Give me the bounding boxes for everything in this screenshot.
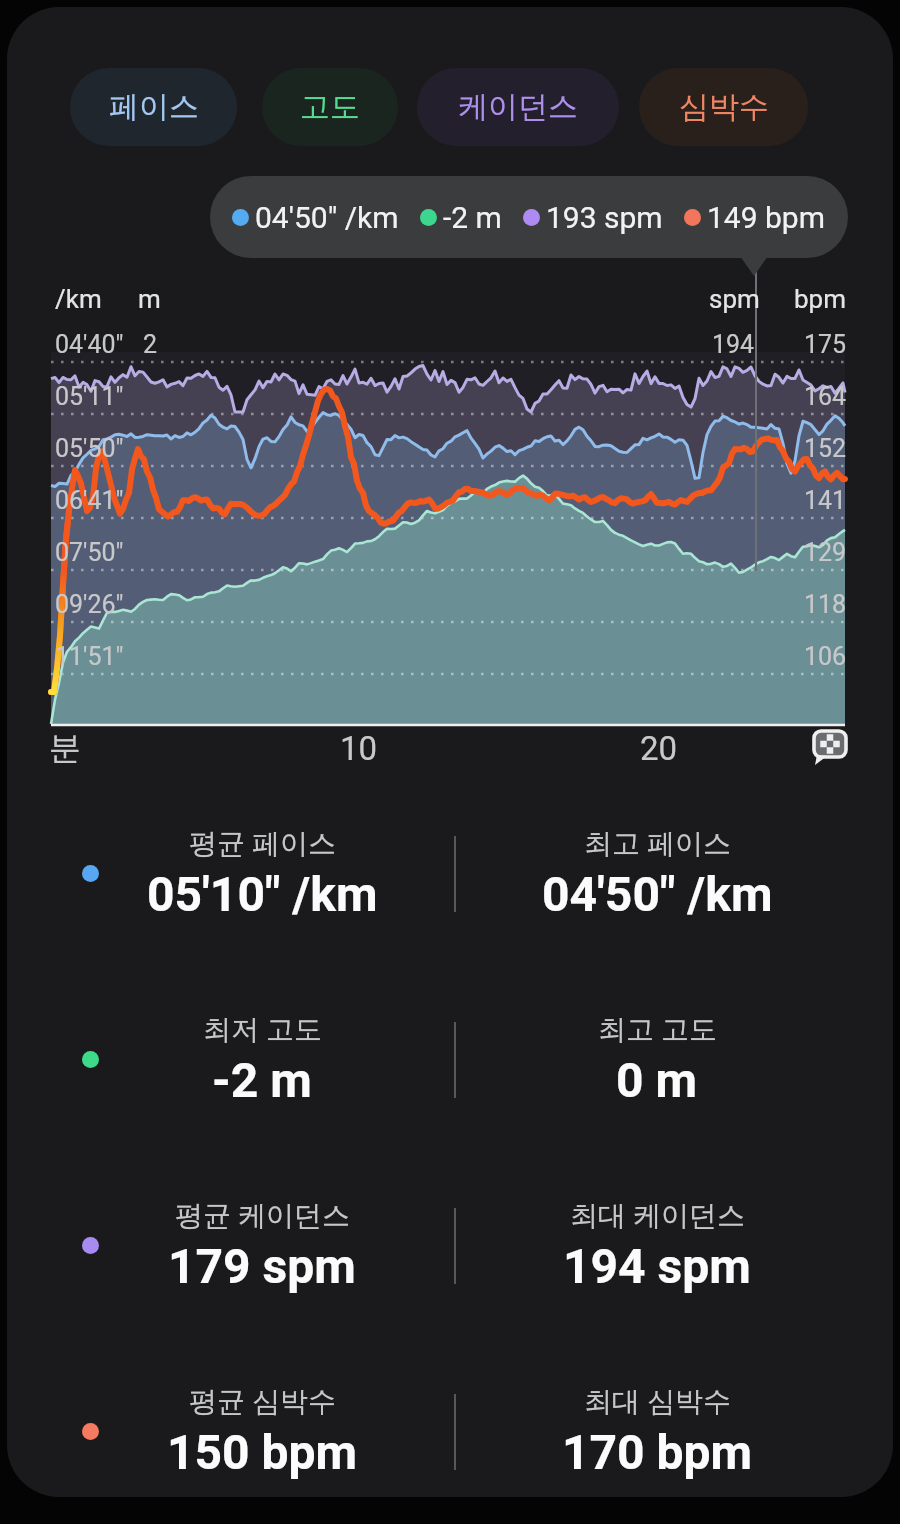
- staticText: 194: [712, 330, 755, 359]
- staticText: 평균 케이던스: [175, 1198, 350, 1233]
- staticText: 최고 고도: [598, 1012, 717, 1047]
- staticText: 04'50" /km: [542, 866, 773, 922]
- staticText: 11'51": [55, 642, 124, 671]
- staticText: 09'26": [55, 590, 124, 619]
- staticText: 05'10" /km: [147, 866, 378, 922]
- staticText: 05'11": [55, 382, 124, 411]
- staticText: 20: [640, 729, 678, 768]
- staticText: bpm: [794, 284, 846, 314]
- staticText: 평균 심박수: [189, 1384, 336, 1419]
- staticText: 04'40": [55, 330, 124, 359]
- staticText: 고도: [300, 88, 360, 126]
- staticText: 06'41": [55, 486, 124, 515]
- staticText: 152: [804, 434, 847, 463]
- staticText: 최저 고도: [203, 1012, 322, 1047]
- button[interactable]: 심박수: [639, 68, 808, 146]
- staticText: 150 bpm: [167, 1424, 358, 1480]
- button[interactable]: 케이던스: [417, 68, 619, 146]
- staticText: 케이던스: [458, 88, 578, 126]
- button[interactable]: 고도: [262, 68, 398, 146]
- staticText: 분: [49, 728, 81, 768]
- staticText: m: [138, 284, 161, 314]
- staticText: 129: [804, 538, 847, 567]
- staticText: 194 spm: [563, 1238, 751, 1294]
- staticText: 심박수: [679, 88, 769, 126]
- staticText: 164: [804, 382, 847, 411]
- staticText: 04'50" /km: [255, 200, 399, 235]
- staticText: spm: [709, 284, 760, 314]
- staticText: 최대 케이던스: [570, 1198, 745, 1233]
- button[interactable]: 페이스: [70, 68, 237, 146]
- staticText: 193 spm: [546, 200, 663, 235]
- staticText: 페이스: [109, 88, 199, 126]
- staticText: /km: [55, 284, 102, 314]
- staticText: -2 m: [212, 1052, 312, 1108]
- staticText: 175: [804, 330, 847, 359]
- staticText: 0 m: [616, 1052, 698, 1108]
- staticText: 평균 페이스: [189, 826, 336, 861]
- staticText: 118: [804, 590, 847, 619]
- staticText: 최고 페이스: [584, 826, 731, 861]
- staticText: 2: [143, 330, 158, 359]
- staticText: 최대 심박수: [584, 1384, 731, 1419]
- staticText: 141: [804, 486, 847, 515]
- staticText: -2 m: [443, 200, 502, 235]
- staticText: 149 bpm: [707, 200, 826, 235]
- staticText: 170 bpm: [562, 1424, 753, 1480]
- staticText: 10: [340, 729, 378, 768]
- staticText: 106: [804, 642, 847, 671]
- staticText: 05'50": [55, 434, 124, 463]
- staticText: 07'50": [55, 538, 124, 567]
- staticText: 179 spm: [168, 1238, 356, 1294]
